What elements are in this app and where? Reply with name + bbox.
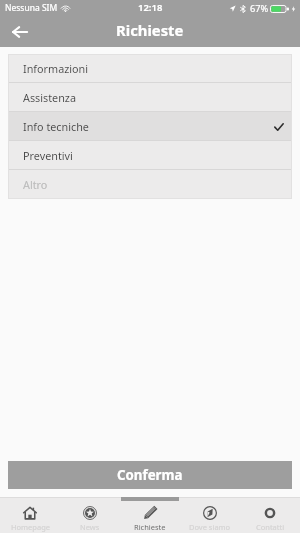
staticText: Contatti [256, 522, 285, 532]
staticText: Richieste [134, 522, 166, 532]
staticText: Informazioni [23, 61, 89, 76]
staticText: Richieste [116, 20, 184, 40]
staticText: Info tecniche [23, 119, 89, 134]
staticText: 12:18 [138, 1, 163, 14]
staticText: News [80, 522, 100, 532]
button[interactable]: Informazioni [8, 54, 292, 83]
button[interactable]: Altro [8, 170, 292, 199]
staticText: Altro [23, 177, 48, 192]
button[interactable]: Contatti [240, 497, 300, 533]
button[interactable]: Assistenza [8, 83, 292, 112]
staticText: Nessuna SIM [5, 2, 58, 14]
staticText: Preventivi [23, 148, 73, 163]
staticText: Conferma [117, 466, 183, 484]
button[interactable]: Preventivi [8, 141, 292, 170]
staticText: Dove siamo [189, 522, 231, 532]
button[interactable]: Conferma [8, 461, 292, 489]
button[interactable]: Back [0, 16, 38, 47]
button[interactable]: Homepage [0, 497, 60, 533]
staticText: Assistenza [23, 90, 76, 105]
staticText: Homepage [11, 522, 50, 532]
staticText: 67% [250, 2, 269, 15]
button[interactable]: News [60, 497, 120, 533]
button[interactable]: Info tecniche [8, 112, 292, 141]
button[interactable]: Dove siamo [180, 497, 240, 533]
button[interactable]: Richieste [120, 497, 180, 533]
